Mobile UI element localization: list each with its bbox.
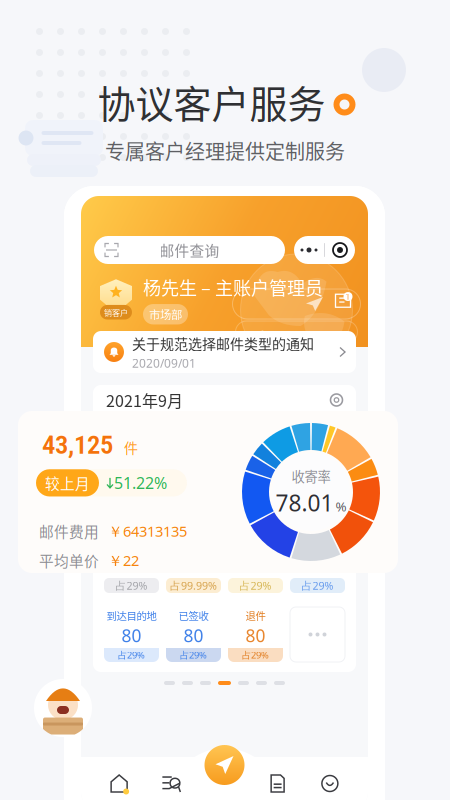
button[interactable]: 关于规范选择邮件类型的通知 — [93, 331, 356, 373]
staticText: ￥22 — [108, 551, 139, 570]
staticText: 78.01 — [275, 488, 333, 518]
button[interactable]: 更多 — [294, 236, 324, 264]
button[interactable]: 已签收 — [166, 607, 221, 662]
staticText: 邮件查询 — [159, 239, 219, 261]
staticText: 退件 — [245, 608, 265, 623]
staticText: 件 — [124, 437, 138, 457]
button[interactable]: 更多 — [290, 607, 345, 662]
staticText: 占29% — [242, 649, 269, 661]
button[interactable]: 退件 — [228, 607, 283, 662]
staticText: 占29% — [118, 649, 145, 661]
button[interactable]: 寄件 — [197, 738, 251, 792]
staticText: 占29% — [180, 649, 207, 661]
staticText: 市场部 — [149, 306, 182, 322]
staticText: 80 — [121, 624, 141, 647]
staticText: 1 — [345, 291, 350, 302]
staticText: 收寄率 — [291, 466, 330, 486]
staticText: 销客户 — [104, 306, 128, 318]
staticText: 较上月 — [45, 472, 90, 493]
staticText: 51.22% — [114, 472, 167, 493]
staticText: 2021年9月 — [106, 388, 183, 412]
staticText: 80 — [183, 624, 203, 647]
button[interactable]: 查询 — [145, 757, 197, 800]
button[interactable]: 消息 — [334, 290, 354, 308]
staticText: 43,125 — [42, 429, 113, 460]
button[interactable]: 到达目的地 — [104, 607, 159, 662]
button[interactable]: 订单 — [251, 757, 304, 800]
staticText: 占29% — [301, 578, 333, 593]
button[interactable]: 设置 — [330, 393, 343, 406]
staticText: 平均单价 — [39, 550, 99, 571]
button[interactable]: 扫描 — [325, 236, 355, 264]
button[interactable]: 我的 — [304, 757, 356, 800]
staticText: 杨先生 – 主账户管理员 — [143, 274, 323, 300]
button[interactable]: 邮件查询 — [94, 236, 285, 264]
staticText: ￥64313135 — [108, 521, 187, 541]
staticText: 占99.99% — [170, 578, 217, 593]
staticText: % — [335, 497, 346, 515]
staticText: 2020/09/01 — [132, 355, 196, 371]
staticText: 协议客户服务 — [97, 74, 325, 129]
staticText: 已签收 — [178, 608, 208, 623]
staticText: 占29% — [115, 578, 147, 593]
staticText: 关于规范选择邮件类型的通知 — [132, 333, 314, 353]
staticText: 专属客户经理提供定制服务 — [105, 136, 345, 165]
staticText: 到达目的地 — [106, 608, 156, 623]
staticText: 邮件费用 — [39, 520, 99, 542]
staticText: 占29% — [239, 578, 271, 593]
staticText: 80 — [245, 624, 265, 647]
button[interactable]: 首页 — [93, 757, 145, 800]
